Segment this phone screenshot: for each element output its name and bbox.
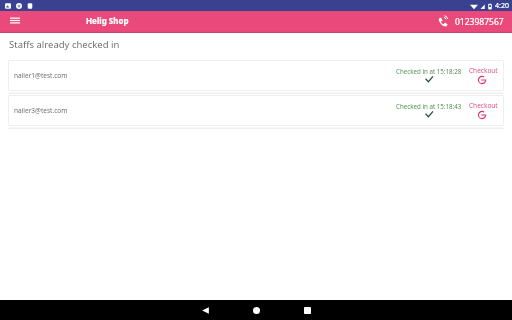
staticText: Checkout — [469, 66, 498, 75]
staticText: nailer1@test.com — [14, 71, 68, 80]
staticText: nailer3@test.com — [14, 106, 68, 115]
button[interactable]: nailer3@test.com — [8, 95, 504, 126]
button[interactable]: Open navigation menu — [6, 11, 24, 29]
button[interactable]: Recent apps — [297, 300, 317, 320]
button[interactable]: Checkout — [469, 101, 498, 119]
staticText: 4:20 — [495, 1, 509, 11]
button[interactable]: Home — [246, 300, 266, 320]
button[interactable]: nailer1@test.com — [8, 60, 504, 91]
staticText: Staffs already checked in — [9, 38, 120, 51]
button[interactable]: Checkout — [469, 66, 498, 84]
staticText: Checked in at 15:18:28 — [396, 67, 462, 75]
staticText: Helig Shop — [86, 15, 129, 26]
staticText: Checked in at 15:18:43 — [396, 102, 462, 110]
staticText: Checkout — [469, 101, 498, 110]
staticText: 0123987567 — [455, 16, 504, 28]
button[interactable]: Back — [195, 300, 215, 320]
button[interactable]: Call 0123987567 — [438, 16, 504, 28]
